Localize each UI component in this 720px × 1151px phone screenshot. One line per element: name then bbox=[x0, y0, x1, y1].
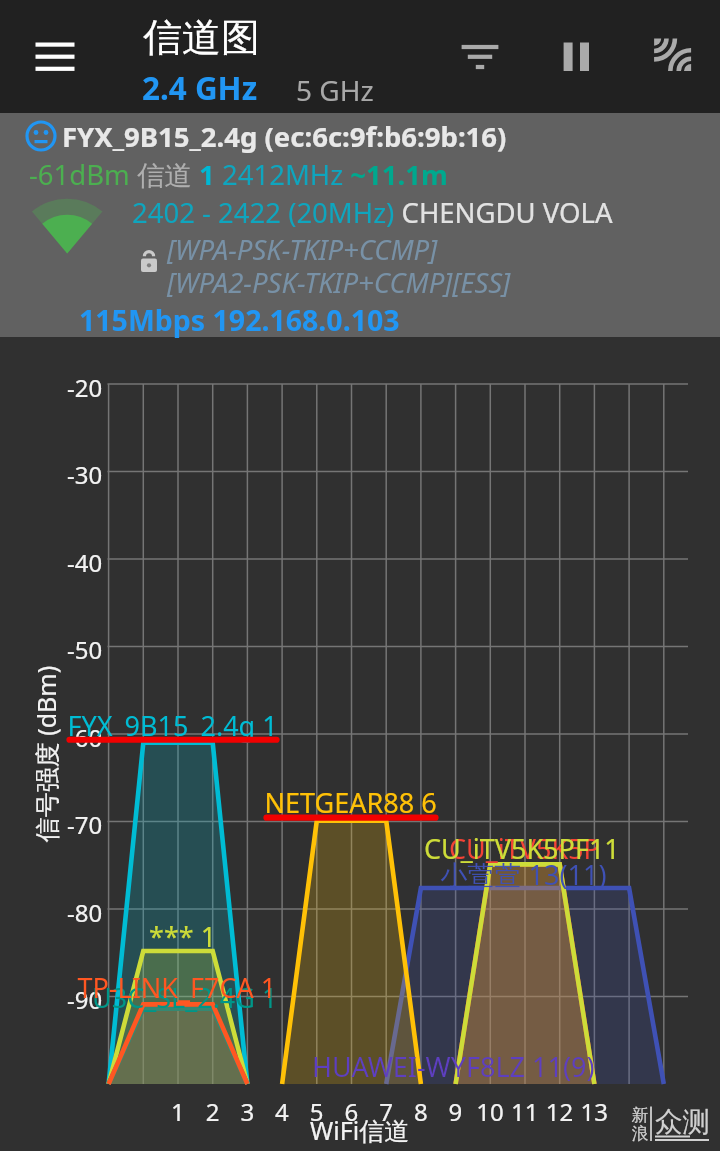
button[interactable]: Filter bbox=[452, 28, 508, 84]
staticText: 信号强度 (dBm) bbox=[29, 634, 63, 874]
button[interactable]: 5 GHz bbox=[296, 71, 374, 109]
staticText: 2.4 GHz bbox=[142, 66, 258, 109]
button[interactable]: Open navigation drawer bbox=[20, 20, 90, 90]
staticText: 2402 - 2422 (20MHz) CHENGDU VOLA bbox=[132, 194, 613, 231]
button[interactable]: FYX_9B15_2.4g (ec:6c:9f:b6:9b:16) bbox=[0, 113, 720, 337]
button[interactable]: Access points bbox=[644, 28, 698, 82]
button[interactable]: 2.4 GHz bbox=[142, 66, 258, 109]
staticText: 5 GHz bbox=[296, 71, 374, 109]
staticText: [WPA-PSK-TKIP+CCMP] [WPA2-PSK-TKIP+CCMP]… bbox=[167, 231, 511, 301]
staticText: 115Mbps 192.168.0.103 bbox=[79, 301, 400, 340]
staticText: 信道图 bbox=[143, 13, 260, 62]
button[interactable]: Pause bbox=[548, 28, 604, 84]
staticText: -61dBm 信道 1 2412MHz ~11.1m bbox=[29, 156, 448, 194]
staticText: FYX_9B15_2.4g (ec:6c:9f:b6:9b:16) bbox=[62, 118, 507, 155]
